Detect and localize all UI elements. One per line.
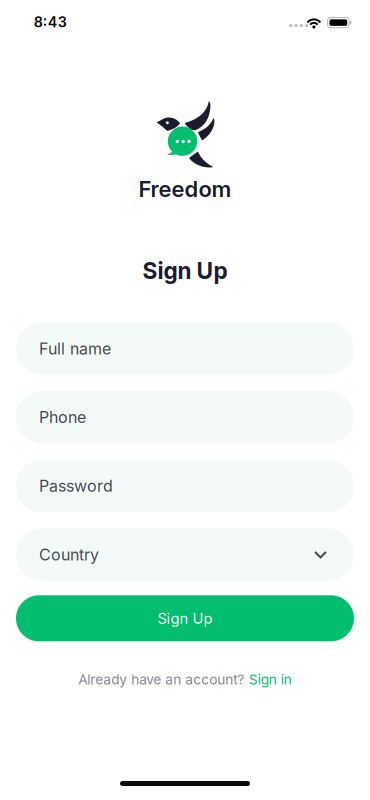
button[interactable]: Full name <box>16 322 354 375</box>
staticText: Already have an account? <box>78 671 244 688</box>
button[interactable]: Sign Up <box>16 595 354 641</box>
staticText: Password <box>39 476 113 496</box>
staticText: 8:43 <box>34 13 67 31</box>
button[interactable]: Country <box>16 528 354 581</box>
staticText: Sign Up <box>142 257 227 284</box>
staticText: Sign Up <box>157 609 212 627</box>
staticText: Freedom <box>138 176 231 202</box>
button[interactable]: Phone <box>16 391 354 443</box>
button[interactable]: Sign in <box>249 671 292 688</box>
staticText: Phone <box>39 408 86 427</box>
button[interactable]: Password <box>16 460 354 512</box>
staticText: Country <box>39 545 99 564</box>
staticText: Full name <box>39 339 111 358</box>
staticText: Sign in <box>249 671 292 688</box>
